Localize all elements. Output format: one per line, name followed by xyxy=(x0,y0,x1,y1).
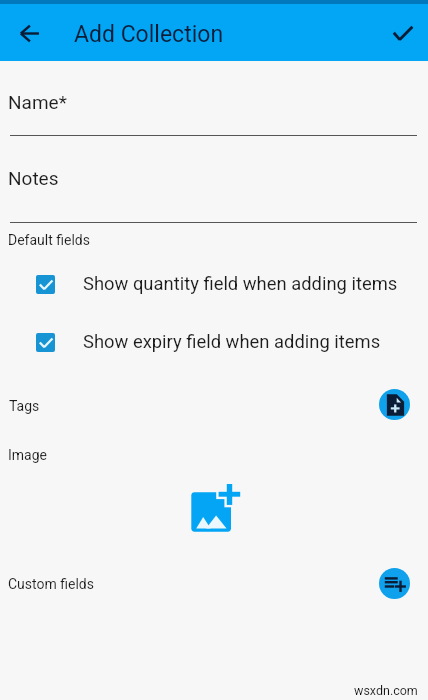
staticText: Show quantity field when adding items xyxy=(83,273,398,295)
staticText: Image xyxy=(8,447,47,463)
staticText: Custom fields xyxy=(8,576,94,592)
button[interactable]: Add tag xyxy=(379,389,410,420)
button[interactable]: Add custom field xyxy=(379,568,410,599)
staticText: Notes xyxy=(8,167,59,189)
button[interactable]: Save xyxy=(383,13,423,53)
staticText: Tags xyxy=(9,398,40,414)
staticText: Show expiry field when adding items xyxy=(83,331,381,353)
staticText: wsxdn.com xyxy=(354,683,418,698)
button[interactable]: Add image xyxy=(190,482,242,534)
staticText: Add Collection xyxy=(74,21,224,48)
button[interactable]: Show quantity field when adding items xyxy=(0,262,428,306)
button[interactable]: Back xyxy=(9,13,49,53)
staticText: Name* xyxy=(8,91,67,113)
staticText: Default fields xyxy=(8,232,90,248)
button[interactable]: Show expiry field when adding items xyxy=(0,320,428,364)
